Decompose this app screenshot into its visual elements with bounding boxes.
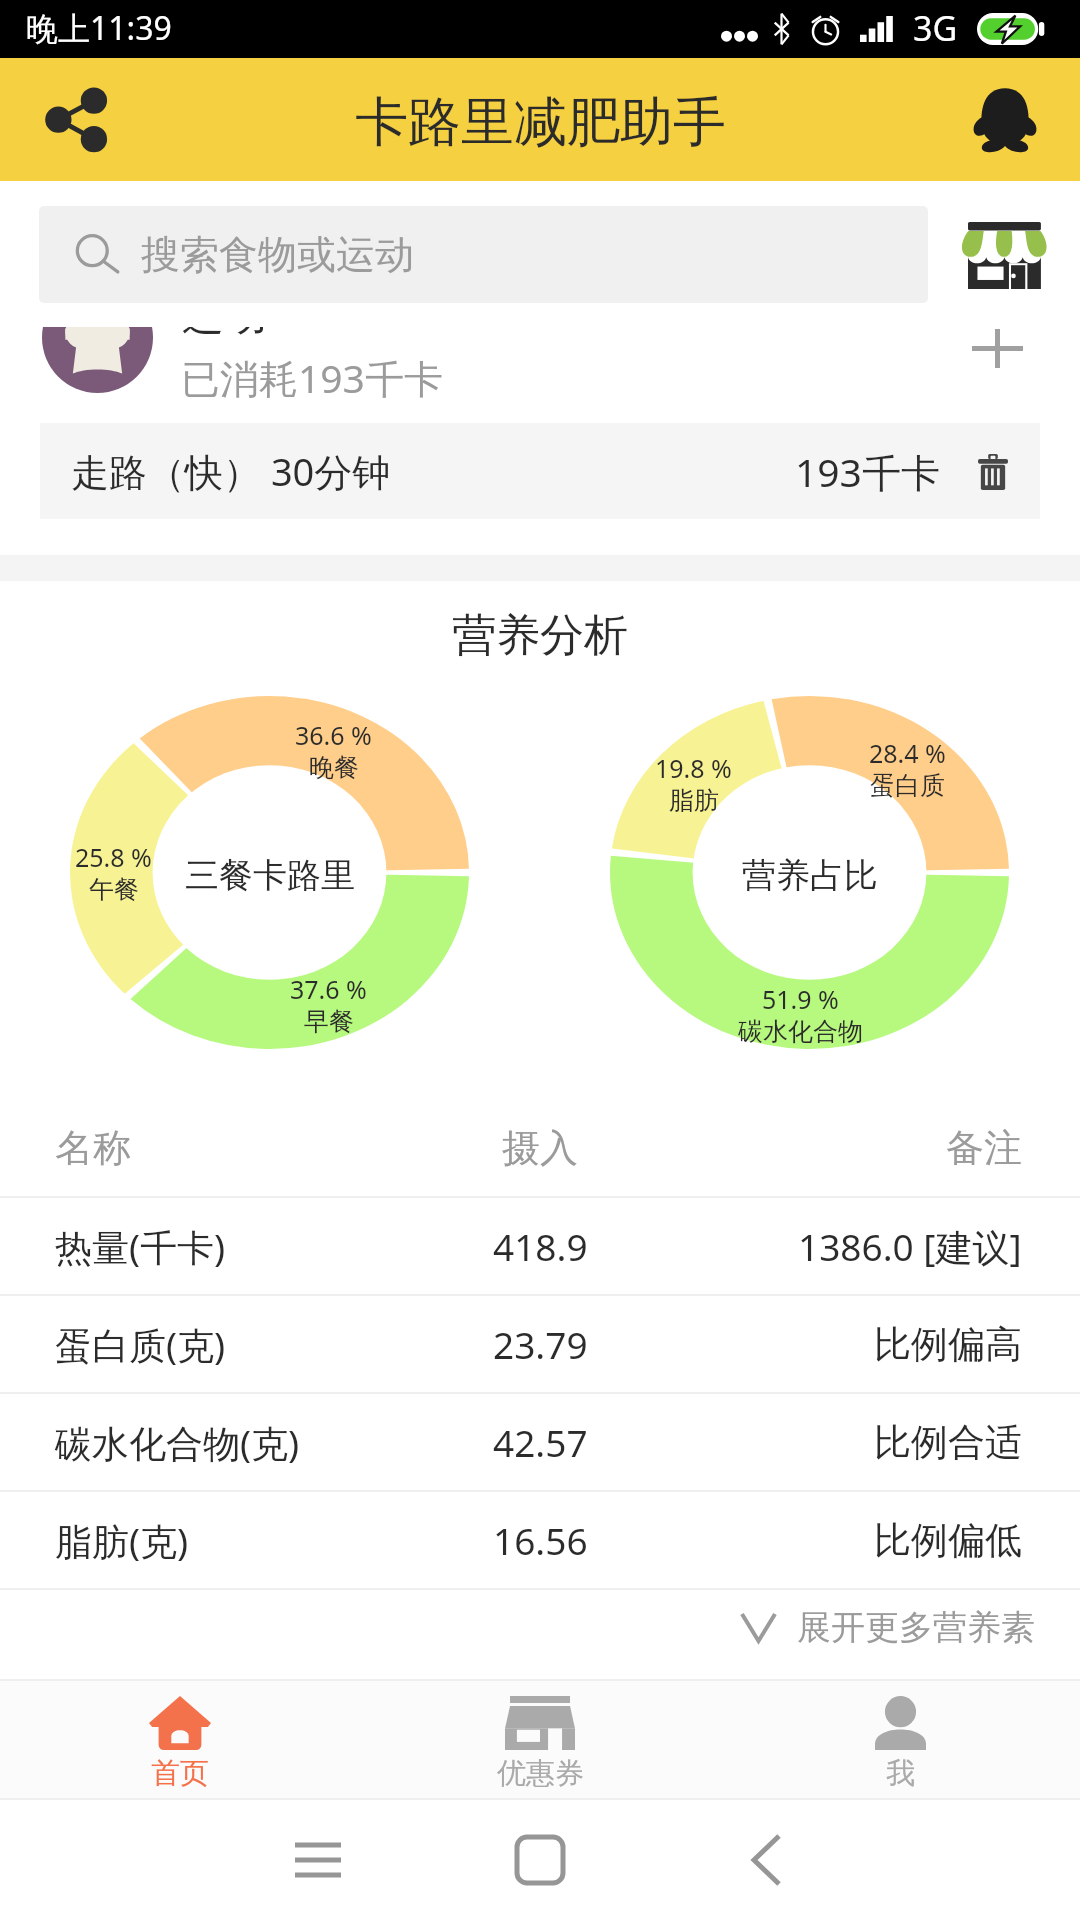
staticText: 备注: [946, 1124, 1022, 1172]
staticText: 早餐: [304, 1006, 354, 1037]
staticText: 午餐: [89, 874, 139, 905]
button[interactable]: Add: [951, 302, 1043, 394]
staticText: 193千卡: [795, 445, 940, 498]
button[interactable]: 热量(千卡): [0, 1198, 1080, 1294]
staticText: 我: [886, 1755, 915, 1792]
staticText: 搜索食物或运动: [141, 230, 414, 279]
button[interactable]: 优惠券: [360, 1681, 720, 1798]
staticText: 首页: [151, 1755, 209, 1792]
staticText: 热量(千卡): [55, 1221, 226, 1272]
staticText: 已消耗193千卡: [181, 351, 443, 404]
staticText: 25.8 %: [75, 840, 152, 874]
staticText: 名称: [55, 1124, 131, 1172]
staticText: 展开更多营养素: [797, 1606, 1035, 1649]
staticText: 走路（快） 30分钟: [71, 445, 391, 497]
button[interactable]: 展开更多营养素: [0, 1590, 1080, 1683]
staticText: 36.6 %: [295, 718, 372, 752]
staticText: 19.8 %: [655, 751, 732, 785]
staticText: 营养占比: [742, 854, 878, 897]
staticText: 1386.0 [建议]: [798, 1221, 1022, 1272]
staticText: 37.6 %: [290, 972, 367, 1006]
button[interactable]: 名称: [0, 1100, 1080, 1196]
staticText: 51.9 %: [762, 982, 839, 1016]
staticText: 营养分析: [0, 608, 1080, 663]
staticText: 卡路里减肥助手: [355, 89, 726, 156]
staticText: 晚餐: [309, 752, 359, 783]
staticText: 23.79: [493, 1319, 588, 1369]
button[interactable]: 蛋白质(克): [0, 1296, 1080, 1392]
button[interactable]: 碳水化合物(克): [0, 1394, 1080, 1490]
staticText: 42.57: [493, 1417, 588, 1467]
staticText: 418.9: [493, 1221, 588, 1271]
staticText: 碳水化合物: [738, 1016, 863, 1047]
button[interactable]: 搜索食物或运动: [39, 206, 928, 303]
button[interactable]: 我: [720, 1681, 1080, 1798]
staticText: 优惠券: [497, 1755, 584, 1792]
staticText: 运动: [182, 289, 266, 342]
button[interactable]: Share: [30, 74, 121, 165]
staticText: 碳水化合物(克): [55, 1417, 300, 1468]
staticText: 蛋白质: [870, 770, 945, 801]
staticText: 3G: [913, 5, 958, 51]
staticText: 比例偏低: [874, 1517, 1022, 1564]
staticText: 16.56: [493, 1515, 588, 1565]
button[interactable]: 走路（快） 30分钟: [40, 423, 1040, 519]
button[interactable]: Delete: [970, 449, 1016, 495]
staticText: 28.4 %: [869, 736, 946, 770]
staticText: 比例偏高: [874, 1321, 1022, 1368]
staticText: 蛋白质(克): [55, 1319, 226, 1370]
staticText: 脂肪: [669, 785, 719, 816]
staticText: 三餐卡路里: [185, 854, 355, 897]
staticText: 脂肪(克): [55, 1515, 189, 1566]
button[interactable]: 首页: [0, 1681, 360, 1798]
staticText: 比例合适: [874, 1419, 1022, 1466]
button[interactable]: Store: [952, 213, 1056, 297]
staticText: 晚上11:39: [26, 6, 172, 50]
button[interactable]: Profile: [959, 74, 1051, 166]
staticText: 摄入: [502, 1124, 578, 1172]
button[interactable]: 脂肪(克): [0, 1492, 1080, 1588]
